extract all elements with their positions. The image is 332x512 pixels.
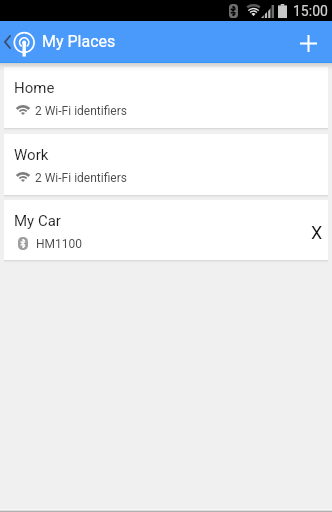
staticText: My Car [14,212,61,230]
button[interactable]: Add place [287,22,329,64]
staticText: 2 Wi-Fi identifiers [35,104,127,118]
button[interactable]: Work [4,134,328,195]
button[interactable]: Home [4,67,328,128]
staticText: X [311,222,323,243]
staticText: Work [14,146,49,164]
staticText: My Places [42,32,116,51]
staticText: 15:00 [293,3,328,19]
button[interactable]: My Car [4,200,328,260]
staticText: 2 Wi-Fi identifiers [35,171,127,185]
button[interactable]: Remove My Car [300,215,332,249]
staticText: Home [14,79,55,97]
staticText: HM1100 [36,237,83,251]
button[interactable]: Navigate up [0,21,14,63]
